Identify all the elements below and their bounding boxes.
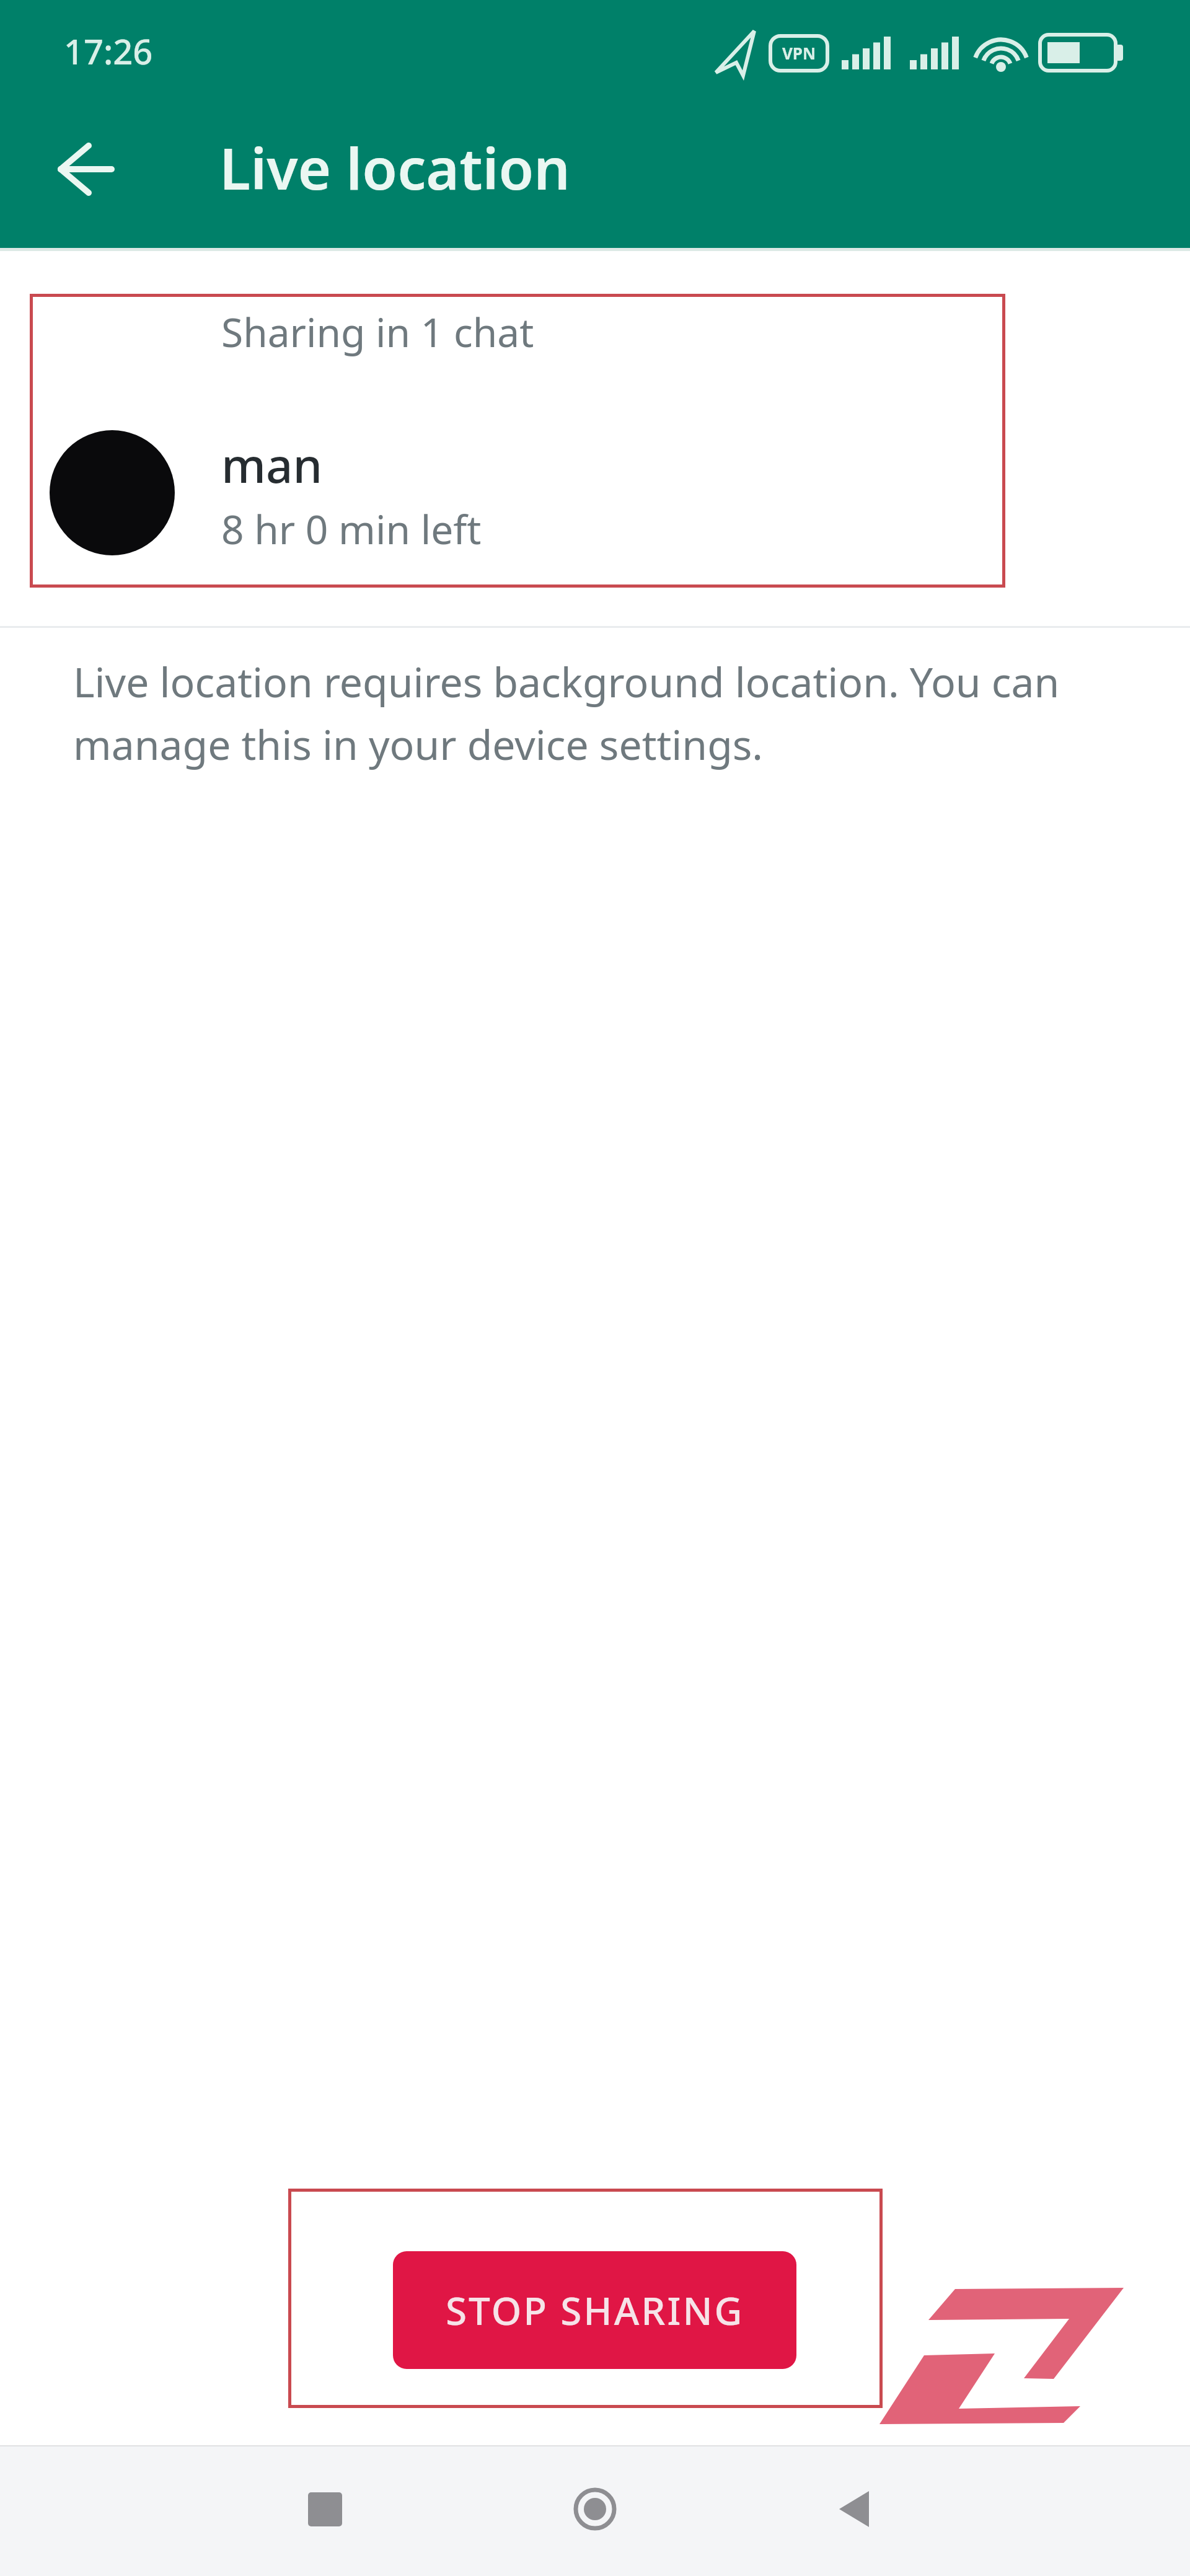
staticText: Sharing in 1 chat bbox=[221, 305, 534, 359]
button[interactable] bbox=[291, 2475, 359, 2543]
staticText: STOP SHARING bbox=[446, 2284, 744, 2336]
staticText: Live location requires background locati… bbox=[73, 653, 1060, 772]
staticText: 17:26 bbox=[64, 27, 153, 74]
staticText: man bbox=[221, 433, 323, 497]
button[interactable]: man bbox=[30, 397, 1005, 583]
button[interactable] bbox=[561, 2475, 629, 2543]
button[interactable] bbox=[37, 124, 136, 217]
staticText: VPN bbox=[773, 42, 824, 64]
button[interactable]: STOP SHARING bbox=[393, 2251, 796, 2369]
staticText: 8 hr 0 min left bbox=[221, 502, 482, 556]
staticText: Live location bbox=[219, 129, 570, 206]
button[interactable] bbox=[821, 2475, 889, 2543]
